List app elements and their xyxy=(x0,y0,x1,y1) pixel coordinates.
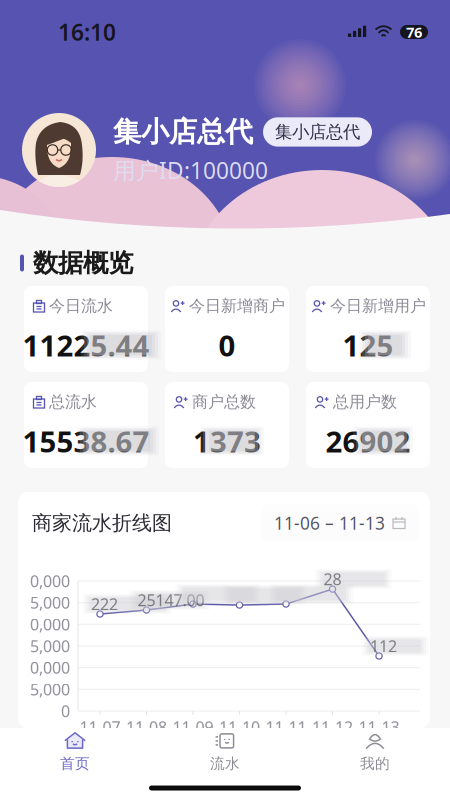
staticText: 11-13 xyxy=(358,716,399,738)
staticText: 16:10 xyxy=(58,17,116,47)
button[interactable]: 今日新增商户 xyxy=(165,286,289,372)
staticText: 222 xyxy=(91,593,118,615)
staticText: 流水 xyxy=(210,754,240,772)
staticText: 28 xyxy=(323,568,341,590)
staticText: 0,000 xyxy=(30,570,70,592)
staticText: 0,000 xyxy=(30,657,70,678)
staticText: 首页 xyxy=(60,754,90,772)
staticText: 今日新增用户 xyxy=(330,296,426,316)
staticText: 我的 xyxy=(360,754,390,772)
staticText: 集小店总代 xyxy=(275,121,360,143)
staticText: 11225.44 xyxy=(22,325,149,364)
button[interactable]: 今日新增用户 xyxy=(306,286,430,372)
staticText: 用户ID:100000 xyxy=(113,155,268,185)
button[interactable]: 流水 xyxy=(150,728,300,776)
button[interactable]: 11-06 – 11-13 xyxy=(262,504,418,541)
staticText: 今日新增商户 xyxy=(189,296,285,316)
staticText: 5,000 xyxy=(30,592,70,613)
staticText: 25147.00 xyxy=(137,589,204,611)
button[interactable]: 总流水 xyxy=(24,382,148,468)
staticText: 11-06 – 11-13 xyxy=(274,511,385,534)
staticText: 总用户数 xyxy=(333,392,397,412)
staticText: 0 xyxy=(61,700,70,722)
button[interactable]: 商户总数 xyxy=(165,382,289,468)
staticText: 76 xyxy=(406,22,422,42)
staticText: 集小店总代 xyxy=(113,115,253,149)
staticText: 今日流水 xyxy=(49,296,113,316)
staticText: 0,000 xyxy=(30,614,70,635)
button[interactable]: 我的 xyxy=(300,728,450,776)
staticText: 0 xyxy=(218,325,235,364)
staticText: 11-08 xyxy=(126,716,167,738)
staticText: 5,000 xyxy=(30,679,70,700)
staticText: 商家流水折线图 xyxy=(32,511,172,535)
staticText: 1373 xyxy=(193,421,261,460)
staticText: 15538.67 xyxy=(22,421,149,460)
staticText: 26902 xyxy=(325,421,410,460)
staticText: 商户总数 xyxy=(192,392,256,412)
staticText: 11-07 xyxy=(79,716,120,738)
button[interactable]: 今日流水 xyxy=(24,286,148,372)
staticText: 11-10 xyxy=(219,716,260,738)
button[interactable]: 首页 xyxy=(0,728,150,776)
staticText: 11-11 xyxy=(265,716,306,738)
staticText: 数据概览 xyxy=(33,247,133,278)
staticText: 11-12 xyxy=(312,716,353,738)
staticText: 125 xyxy=(342,325,393,364)
button[interactable]: 总用户数 xyxy=(306,382,430,468)
staticText: 11-09 xyxy=(172,716,213,738)
staticText: 5,000 xyxy=(30,635,70,657)
staticText: 总流水 xyxy=(49,392,97,412)
staticText: 112 xyxy=(370,635,397,657)
